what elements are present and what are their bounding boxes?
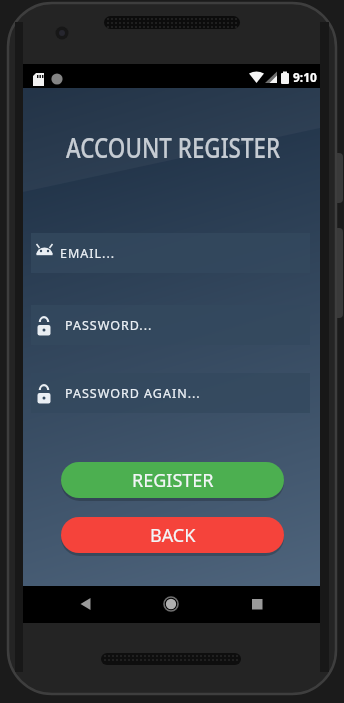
button[interactable] bbox=[242, 589, 272, 619]
button[interactable] bbox=[156, 589, 186, 619]
staticText: BACK bbox=[150, 523, 196, 548]
button[interactable]: PASSWORD... bbox=[31, 305, 310, 345]
button[interactable]: BACK bbox=[61, 517, 284, 553]
button[interactable]: PASSWORD AGAIN... bbox=[31, 373, 310, 413]
staticText: ACCOUNT REGISTER bbox=[66, 129, 281, 163]
staticText: PASSWORD... bbox=[65, 317, 153, 334]
button[interactable]: EMAIL... bbox=[31, 233, 310, 273]
button[interactable]: REGISTER bbox=[61, 462, 284, 498]
button[interactable] bbox=[66, 589, 96, 619]
staticText: 9:10 bbox=[293, 69, 317, 85]
staticText: EMAIL... bbox=[60, 245, 116, 262]
staticText: REGISTER bbox=[132, 468, 214, 493]
staticText: PASSWORD AGAIN... bbox=[65, 385, 201, 402]
